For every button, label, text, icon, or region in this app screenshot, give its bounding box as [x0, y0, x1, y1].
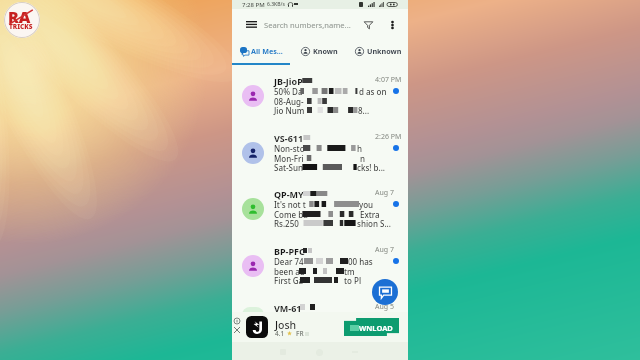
- staticText: Known: [313, 46, 338, 56]
- staticText: BP-PFC: [274, 245, 305, 257]
- button[interactable]: Unknown: [349, 40, 408, 62]
- button[interactable]: Filter messages: [359, 12, 377, 37]
- staticText: 50% Da: [274, 86, 303, 97]
- button[interactable]: BP-PFC: [232, 240, 408, 297]
- staticText: VS-611: [274, 132, 304, 144]
- button[interactable]: JB-JioP: [232, 70, 408, 127]
- staticText: been ad: [274, 266, 305, 277]
- staticText: JB-JioP: [274, 75, 303, 87]
- button[interactable]: QP-MY: [232, 183, 408, 240]
- staticText: Non-sto: [274, 143, 305, 154]
- button[interactable]: Known: [290, 40, 349, 62]
- button[interactable]: Search numbers,name...: [264, 12, 362, 37]
- staticText: Josh: [275, 318, 297, 332]
- staticText: n: [360, 153, 366, 164]
- staticText: Extra: [360, 209, 380, 220]
- staticText: VM-61: [274, 302, 302, 314]
- staticText: Unknown: [367, 46, 402, 56]
- staticText: 4:07 PM: [375, 75, 402, 85]
- staticText: Aug 5: [375, 302, 394, 312]
- staticText: 08-Aug-: [274, 96, 304, 107]
- staticText: RA: [8, 6, 31, 28]
- staticText: It's not t: [274, 199, 306, 210]
- staticText: 7:28 PM: [242, 1, 265, 9]
- staticText: Aug 7: [375, 245, 394, 255]
- staticText: Jio Num: [274, 105, 305, 116]
- staticText: tm: [344, 266, 355, 277]
- staticText: All Mes...: [251, 46, 283, 56]
- staticText: Rs.250: [274, 218, 301, 229]
- staticText: Aug 7: [375, 188, 394, 198]
- staticText: Dear 74: [274, 256, 304, 267]
- button[interactable]: [344, 318, 399, 336]
- staticText: you: [359, 199, 374, 210]
- staticText: h: [357, 143, 363, 154]
- button[interactable]: All Mes...: [232, 40, 290, 62]
- staticText: TRICKS: [9, 22, 33, 31]
- staticText: Mon-Fri: [274, 153, 304, 164]
- button[interactable]: Open navigation menu: [237, 12, 265, 37]
- staticText: cks! b...: [357, 162, 386, 173]
- staticText: Sat-Sun: [274, 162, 304, 173]
- staticText: shion S...: [357, 218, 391, 229]
- staticText: d as on: [359, 86, 387, 97]
- staticText: 8...: [358, 105, 370, 116]
- button[interactable]: Compose new message: [372, 279, 398, 305]
- button[interactable]: More options: [383, 12, 401, 37]
- staticText: 6.3KB/s: [267, 1, 285, 8]
- staticText: Come ba: [274, 209, 308, 220]
- button[interactable]: VM-61: [232, 296, 408, 312]
- staticText: 4.1: [275, 329, 285, 338]
- staticText: QP-MY: [274, 188, 304, 200]
- staticText: 00 has: [348, 256, 373, 267]
- staticText: Search numbers,name...: [264, 20, 351, 30]
- button[interactable]: VS-611: [232, 127, 408, 184]
- staticText: to Pl: [344, 275, 362, 286]
- staticText: 2:26 PM: [375, 132, 402, 142]
- staticText: FR: [296, 329, 304, 338]
- staticText: First Ga: [274, 275, 304, 286]
- staticText: WNLOAD: [359, 323, 393, 333]
